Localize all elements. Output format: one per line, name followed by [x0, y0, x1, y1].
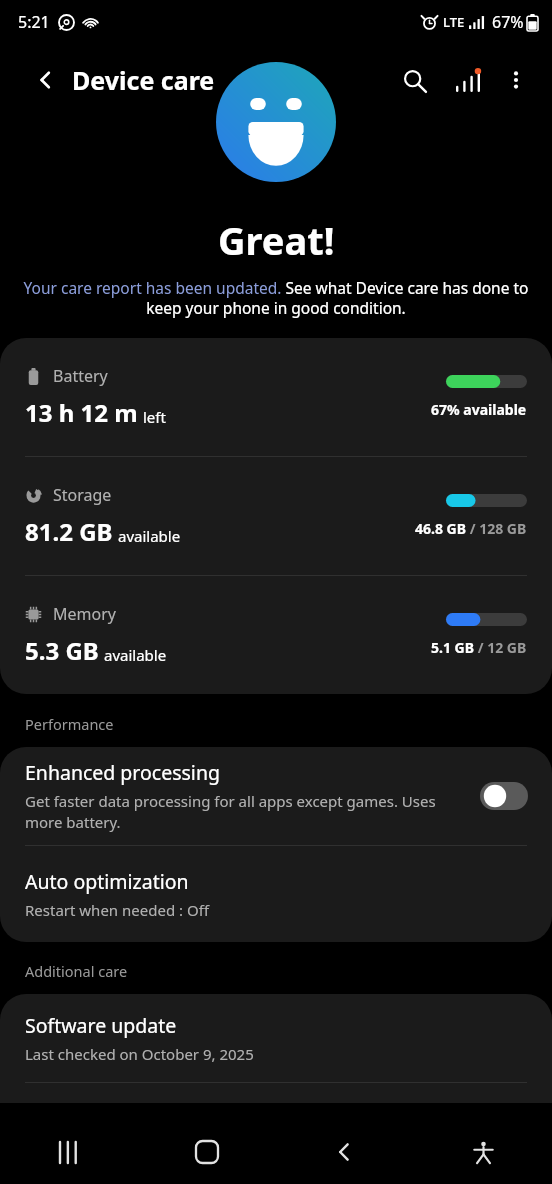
staticText: Enhanced processing — [25, 759, 220, 786]
staticText: Great! — [218, 214, 335, 266]
staticText: Auto optimization — [25, 868, 189, 895]
button[interactable]: Accessibility — [414, 1120, 552, 1184]
staticText: available — [104, 645, 167, 665]
button[interactable]: Storage — [0, 457, 552, 575]
staticText: 67% — [492, 11, 524, 33]
staticText: Performance — [25, 714, 114, 734]
staticText: Additional care — [25, 961, 128, 981]
staticText: left — [143, 407, 166, 427]
staticText: Last checked on October 9, 2025 — [25, 1044, 254, 1064]
staticText: 5.3 GB — [25, 634, 99, 667]
button[interactable]: Enhanced processing toggle — [480, 782, 528, 810]
staticText: 5.1 GB / 12 GB — [431, 638, 527, 657]
staticText: 67% available — [431, 400, 527, 419]
button[interactable]: Diagnostics — [446, 58, 490, 102]
staticText: Storage — [53, 484, 112, 506]
button[interactable]: Enhanced processing — [0, 747, 552, 845]
button[interactable]: Battery — [0, 338, 552, 456]
staticText: Memory — [53, 603, 116, 625]
staticText: 81.2 GB — [25, 515, 113, 548]
staticText: Get faster data processing for all apps … — [25, 791, 442, 833]
staticText: 5:21 — [18, 11, 50, 33]
staticText: Battery — [53, 365, 108, 387]
staticText: 46.8 GB / 128 GB — [415, 519, 527, 538]
button[interactable]: Home — [138, 1120, 276, 1184]
staticText: 13 h 12 m — [25, 396, 138, 429]
staticText: LTE — [443, 13, 465, 31]
button[interactable]: Back — [276, 1120, 414, 1184]
staticText: Software update — [25, 1012, 177, 1039]
button[interactable]: More options — [494, 58, 538, 102]
button[interactable]: Search — [392, 58, 436, 102]
button[interactable]: Software update — [0, 994, 552, 1082]
staticText: Restart when needed : Off — [25, 900, 209, 920]
button[interactable]: Auto optimization — [0, 846, 552, 942]
button[interactable]: Memory — [0, 576, 552, 694]
button[interactable]: Navigate up — [26, 60, 66, 100]
staticText: Your care report has been updated. See w… — [22, 277, 530, 319]
staticText: available — [118, 526, 181, 546]
staticText: Device care — [72, 63, 215, 97]
button[interactable]: Recent apps — [0, 1120, 138, 1184]
